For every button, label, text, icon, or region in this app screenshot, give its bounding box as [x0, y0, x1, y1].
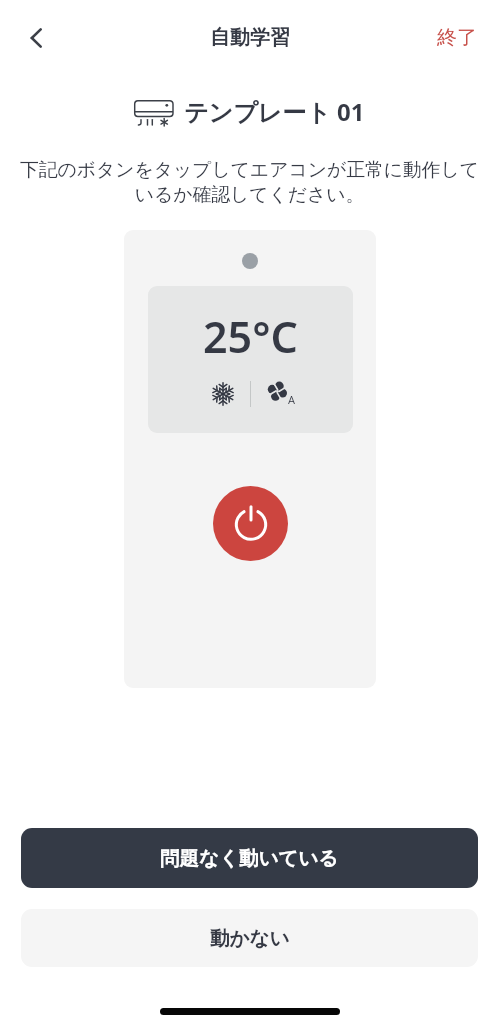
staticText: テンプレート 01 [184, 95, 365, 128]
staticText: 下記のボタンをタップしてエアコンが正常に動作して いるか確認してください。 [12, 158, 487, 206]
staticText: 問題なく動いている [160, 846, 339, 871]
button[interactable]: 問題なく動いている [21, 828, 478, 888]
button[interactable]: Power [213, 486, 288, 561]
staticText: A [288, 392, 296, 407]
button[interactable]: Back [12, 13, 60, 61]
staticText: 自動学習 [210, 25, 290, 50]
button[interactable]: 動かない [21, 909, 478, 967]
staticText: 25°C [203, 307, 298, 366]
staticText: 動かない [210, 926, 290, 951]
staticText: 終了 [437, 25, 477, 50]
button[interactable]: 終了 [419, 13, 499, 62]
